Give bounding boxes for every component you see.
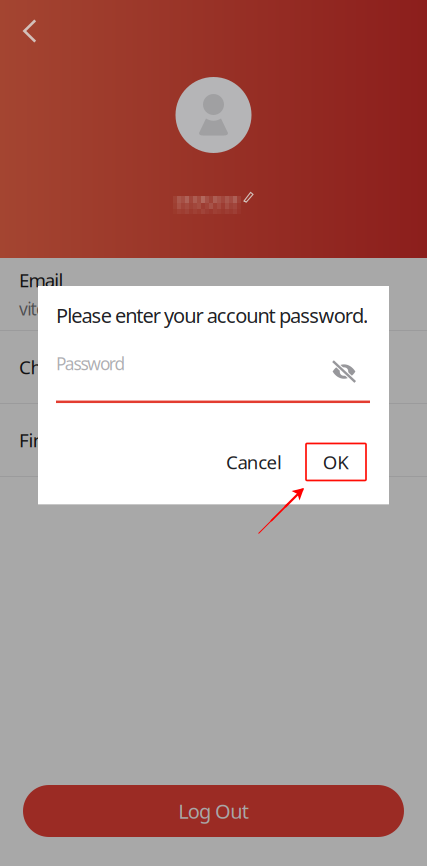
staticText: Fingerprint	[19, 428, 113, 452]
staticText: Log Out	[178, 798, 249, 824]
button[interactable]: Edit name	[173, 191, 254, 214]
staticText: Cancel	[226, 450, 282, 474]
staticText: vito.petrenko@gmail.com	[19, 297, 212, 320]
button[interactable]: OK	[306, 443, 366, 480]
staticText: Password	[56, 352, 126, 375]
button[interactable]: Log Out	[23, 785, 404, 837]
staticText: Change Password	[19, 355, 167, 379]
button[interactable]: Cancel	[212, 438, 292, 486]
staticText: OK	[323, 450, 349, 474]
staticText: Please enter your account password.	[56, 302, 368, 329]
button[interactable]: Back	[0, 0, 53, 59]
staticText: Email	[19, 268, 64, 292]
button[interactable]: Email	[0, 258, 427, 331]
button[interactable]: Show password	[332, 353, 370, 375]
button[interactable]: Fingerprint	[0, 404, 427, 477]
button[interactable]: Change Password	[0, 331, 427, 404]
